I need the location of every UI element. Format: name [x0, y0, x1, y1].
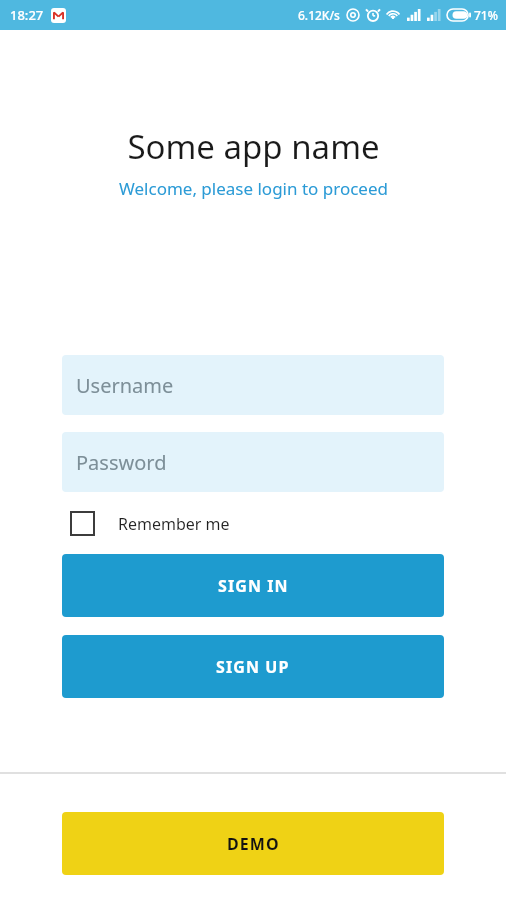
staticText: Remember me — [118, 513, 230, 535]
staticText: Username — [76, 372, 174, 399]
staticText: SIGN UP — [216, 656, 290, 678]
staticText: DEMO — [227, 833, 280, 855]
button[interactable]: Remember me — [62, 508, 230, 539]
staticText: 71% — [474, 7, 498, 23]
button[interactable]: SIGN UP — [62, 635, 444, 698]
staticText: Password — [76, 449, 167, 476]
button[interactable]: SIGN IN — [62, 554, 444, 617]
button[interactable]: Password — [62, 432, 444, 492]
staticText: Welcome, please login to proceed — [119, 177, 388, 200]
staticText: 6.12K/s — [298, 7, 340, 23]
staticText: Some app name — [127, 124, 380, 169]
button[interactable]: DEMO — [62, 812, 444, 875]
button[interactable]: Username — [62, 355, 444, 415]
staticText: 18:27 — [10, 6, 44, 24]
staticText: SIGN IN — [218, 575, 289, 597]
